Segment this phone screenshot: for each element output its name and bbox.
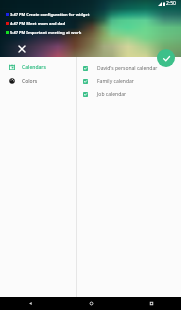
staticText: 2:50 (166, 0, 176, 7)
staticText: 3:47 PM Create configuration for widget (10, 12, 90, 17)
button[interactable]: Calendars (0, 60, 76, 74)
button[interactable]: Recents (121, 297, 181, 310)
staticText: Job calendar (97, 91, 127, 98)
button[interactable]: Colors (0, 74, 76, 88)
button[interactable]: Close (14, 41, 29, 56)
staticText: Family calendar (97, 78, 134, 85)
staticText: Colors (22, 78, 38, 85)
staticText: Calendars (22, 64, 46, 71)
button[interactable]: Home (61, 297, 121, 310)
button[interactable]: Back (0, 297, 61, 310)
staticText: David's personal calendar (97, 65, 158, 72)
button[interactable]: Done (157, 49, 175, 67)
staticText: 5:47 PM Important meeting at work (10, 30, 82, 35)
staticText: 4:47 PM Meet mom and dad (10, 21, 66, 26)
button[interactable]: David's personal calendar (77, 62, 181, 75)
button[interactable]: Family calendar (77, 75, 181, 88)
button[interactable]: Job calendar (77, 88, 181, 101)
